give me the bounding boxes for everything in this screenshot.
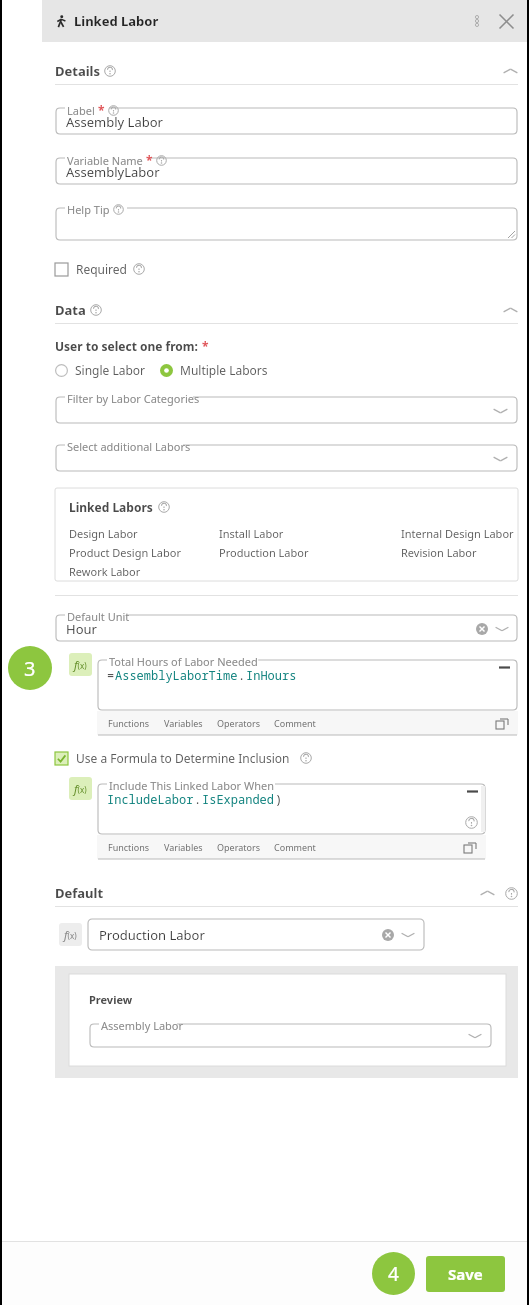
staticText: Linked Labors: [69, 499, 153, 515]
staticText: Default: [55, 884, 104, 902]
staticText: Assembly Labor: [101, 1018, 184, 1033]
staticText: Multiple Labors: [180, 362, 268, 378]
staticText: f(x): [64, 927, 77, 942]
staticText: AssemblyLabor: [66, 163, 160, 181]
button[interactable]: Default: [55, 880, 518, 906]
button[interactable]: Expand editor: [496, 717, 509, 730]
staticText: Required: [76, 261, 127, 277]
staticText: Product Design Labor: [69, 545, 181, 560]
button[interactable]: Comment: [274, 841, 316, 853]
button[interactable]: Total Hours of Labor Needed: [97, 653, 518, 736]
staticText: Data: [55, 301, 86, 319]
staticText: Rework Labor: [69, 564, 141, 579]
staticText: Assembly Labor: [66, 113, 163, 131]
button[interactable]: 3: [8, 646, 52, 690]
button[interactable]: Required: [55, 259, 145, 279]
staticText: Hour: [66, 620, 97, 638]
staticText: IncludeLabor: [107, 791, 194, 807]
staticText: Preview: [89, 992, 133, 1007]
button[interactable]: Operators: [217, 717, 260, 729]
button[interactable]: Include This Linked Labor When: [97, 777, 486, 860]
button[interactable]: Save: [426, 1256, 505, 1292]
button[interactable]: 4: [372, 1252, 415, 1295]
staticText: Comment: [274, 841, 316, 853]
staticText: Linked Labor: [74, 12, 159, 30]
staticText: Details: [55, 62, 100, 80]
button[interactable]: Production Labor: [88, 919, 424, 950]
staticText: *: [98, 102, 105, 118]
staticText: Filter by Labor Categories: [67, 391, 200, 406]
staticText: f(x): [74, 657, 87, 672]
staticText: 4: [388, 1261, 399, 1287]
button[interactable]: Comment: [274, 717, 316, 729]
staticText: InHours: [246, 667, 297, 683]
button[interactable]: Select additional Labors: [55, 438, 518, 472]
button[interactable]: Assembly Labor: [89, 1017, 492, 1048]
button[interactable]: Formula: [69, 777, 92, 800]
button[interactable]: Formula: [59, 923, 82, 946]
button[interactable]: Help Tip: [55, 201, 518, 241]
staticText: Variables: [164, 717, 203, 729]
button[interactable]: Formula: [69, 653, 92, 676]
staticText: 3: [24, 655, 36, 682]
staticText: .: [194, 791, 202, 807]
staticText: Operators: [217, 841, 260, 853]
button[interactable]: Use a Formula to Determine Inclusion: [55, 750, 312, 766]
staticText: *: [202, 338, 209, 354]
staticText: IsExpanded: [202, 791, 275, 807]
staticText: Comment: [274, 717, 316, 729]
staticText: Internal Design Labor: [401, 526, 514, 541]
staticText: Select additional Labors: [67, 439, 191, 454]
button[interactable]: Filter by Labor Categories: [55, 390, 518, 424]
staticText: Variable Name: [67, 153, 143, 168]
button[interactable]: Default Unit: [55, 608, 518, 642]
button[interactable]: More options: [470, 14, 484, 28]
staticText: f(x): [74, 781, 87, 796]
staticText: Use a Formula to Determine Inclusion: [76, 750, 290, 766]
staticText: Functions: [108, 717, 150, 729]
staticText: Default Unit: [67, 609, 130, 624]
button[interactable]: Details: [55, 58, 518, 84]
staticText: Production Labor: [219, 545, 309, 560]
staticText: Revision Labor: [401, 545, 477, 560]
staticText: *: [146, 152, 153, 168]
staticText: Production Labor: [99, 926, 205, 944]
button[interactable]: Multiple Labors: [160, 362, 268, 378]
button[interactable]: Variables: [164, 841, 203, 853]
staticText: Operators: [217, 717, 260, 729]
button[interactable]: Variable Name: [55, 151, 518, 185]
staticText: Variables: [164, 841, 203, 853]
button[interactable]: Variables: [164, 717, 203, 729]
staticText: ): [275, 791, 283, 807]
button[interactable]: Expand editor: [464, 841, 477, 854]
staticText: Functions: [108, 841, 150, 853]
button[interactable]: Functions: [108, 841, 150, 853]
staticText: =: [107, 667, 115, 683]
staticText: Label: [67, 103, 95, 118]
button[interactable]: Functions: [108, 717, 150, 729]
staticText: AssemblyLaborTime: [115, 667, 238, 683]
button[interactable]: Data: [55, 297, 518, 323]
staticText: Save: [448, 1264, 483, 1284]
staticText: Help Tip: [67, 202, 110, 217]
button[interactable]: Label: [55, 101, 518, 135]
staticText: Design Labor: [69, 526, 138, 541]
staticText: .: [238, 667, 246, 683]
staticText: Include This Linked Labor When: [109, 778, 275, 793]
button[interactable]: Operators: [217, 841, 260, 853]
button[interactable]: Close: [498, 13, 515, 30]
staticText: Total Hours of Labor Needed: [109, 654, 258, 669]
staticText: Install Labor: [219, 526, 284, 541]
staticText: User to select one from:: [55, 338, 198, 354]
button[interactable]: Single Labor: [55, 362, 146, 378]
staticText: Single Labor: [75, 362, 146, 378]
